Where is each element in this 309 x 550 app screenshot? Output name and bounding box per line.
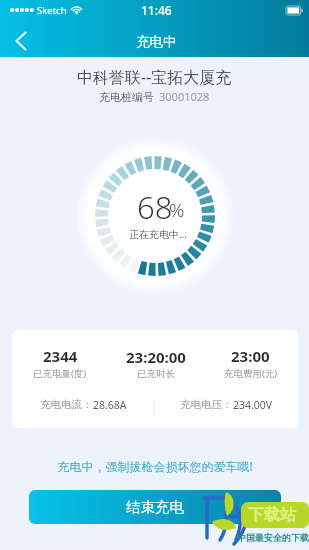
staticText: 充电中 [136, 33, 177, 50]
staticText: 2344 [43, 346, 78, 366]
staticText: 充电费用(元) [224, 367, 278, 380]
staticText: 28.68A [93, 398, 127, 412]
staticText: 68 [137, 186, 173, 228]
staticText: 中国最安全的下载站 [237, 532, 309, 543]
staticText: 已充时长 [137, 368, 175, 380]
staticText: 充电桩编号 [99, 90, 154, 104]
button[interactable]: Back [0, 20, 42, 57]
staticText: 11:46 [141, 2, 172, 18]
staticText: % [169, 197, 185, 223]
staticText: 下载站 [248, 505, 296, 525]
staticText: 结束充电 [126, 498, 184, 516]
staticText: 充电电压： [180, 398, 233, 411]
button[interactable]: 结束充电 [29, 490, 281, 524]
staticText: 234.00V [233, 398, 273, 412]
staticText: Sketch [37, 4, 67, 17]
staticText: 充电电流： [40, 398, 93, 411]
staticText: 23:20:00 [126, 347, 186, 367]
staticText: 正在充电中... [129, 227, 188, 241]
staticText: 充电中，强制拔枪会损坏您的爱车哦! [57, 458, 253, 474]
staticText: 23:00 [231, 346, 270, 366]
staticText: 已充电量(度) [33, 367, 87, 380]
staticText: 中科誉联--宝拓大厦充 [77, 66, 232, 88]
staticText: 30001028 [159, 89, 210, 104]
